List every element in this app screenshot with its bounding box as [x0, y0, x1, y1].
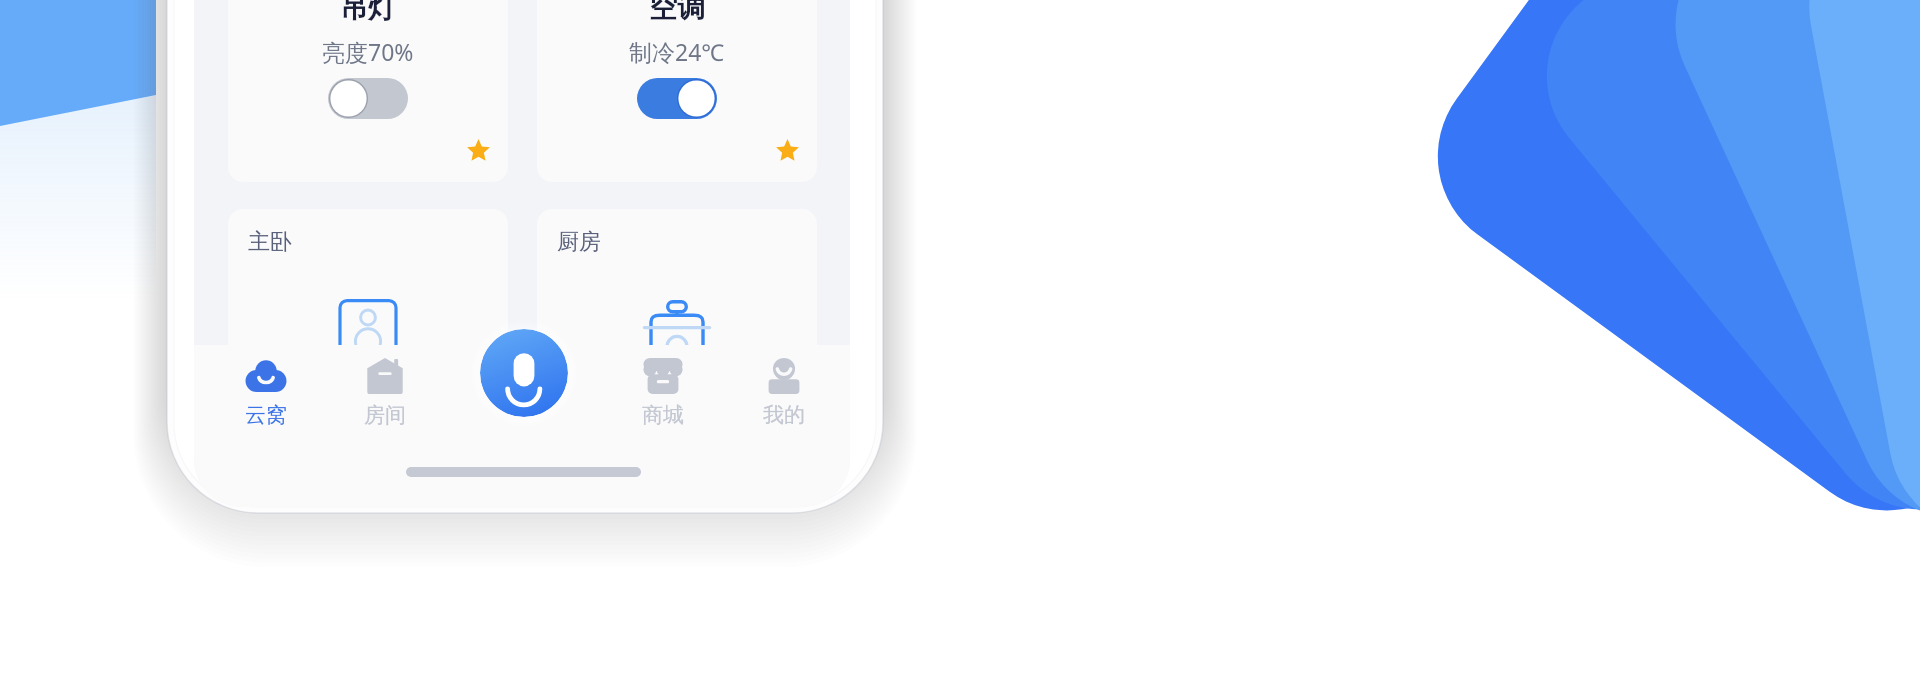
- staticText: 空调: [649, 0, 705, 25]
- button[interactable]: 房间: [331, 352, 439, 428]
- button[interactable]: 商城: [609, 352, 717, 428]
- staticText: 我的: [763, 402, 805, 428]
- button[interactable]: Voice assistant: [480, 329, 568, 417]
- staticText: 云窝: [245, 402, 287, 428]
- button[interactable]: Switch off: [328, 78, 408, 119]
- button[interactable]: 云窝: [212, 352, 320, 428]
- staticText: 吊灯: [340, 0, 396, 25]
- staticText: 主卧: [248, 228, 292, 256]
- staticText: 商城: [642, 402, 684, 428]
- button[interactable]: 空调: [537, 0, 817, 182]
- button[interactable]: 主卧: [228, 209, 508, 409]
- staticText: 房间: [364, 402, 406, 428]
- staticText: 亮度70%: [322, 36, 414, 67]
- staticText: 厨房: [557, 228, 601, 256]
- button[interactable]: Switch on: [637, 78, 717, 119]
- button[interactable]: 我的: [730, 352, 838, 428]
- button[interactable]: 吊灯: [228, 0, 508, 182]
- staticText: 制冷24℃: [629, 36, 725, 67]
- button[interactable]: 厨房: [537, 209, 817, 409]
